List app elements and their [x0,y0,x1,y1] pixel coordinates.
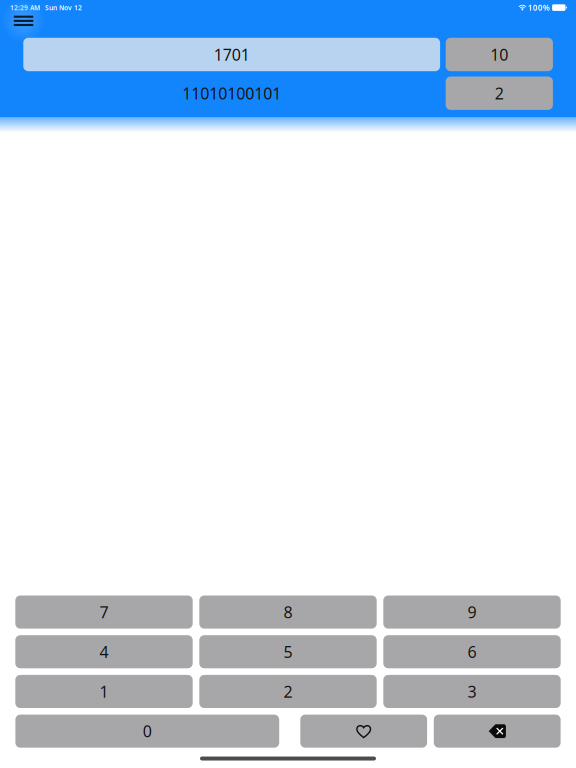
staticText: 6 [467,641,476,662]
button[interactable]: Menu [0,13,48,29]
button[interactable]: 9 [383,595,561,629]
button[interactable]: 2 [446,76,553,110]
button[interactable]: 3 [383,675,561,708]
button[interactable]: 10 [446,38,553,71]
button[interactable]: 11010100101 [23,76,440,110]
staticText: 1 [99,681,108,702]
staticText: 11010100101 [182,83,281,104]
staticText: 1701 [214,44,250,65]
button[interactable]: 2 [199,675,377,708]
staticText: 7 [99,601,108,623]
staticText: 2 [495,83,504,104]
staticText: 8 [283,601,292,623]
button[interactable]: 1701 [23,38,440,71]
staticText: Sun Nov 12 [45,3,82,12]
staticText: 10 [490,44,508,65]
staticText: 0 [143,720,152,742]
staticText: 2 [283,681,292,702]
button[interactable]: Backspace [434,715,561,748]
button[interactable]: 8 [199,595,377,629]
staticText: 12:29 AM [10,3,40,12]
staticText: 5 [283,641,292,662]
staticText: 4 [99,641,108,662]
button[interactable]: 6 [383,635,561,668]
staticText: 9 [467,601,476,623]
button[interactable]: 5 [199,635,377,668]
staticText: 100% [528,2,550,13]
staticText: 3 [467,681,476,702]
button[interactable]: 4 [15,635,193,668]
button[interactable]: 7 [15,595,193,629]
button[interactable]: 0 [15,715,279,748]
button[interactable]: Favourite [300,715,427,748]
button[interactable]: 1 [15,675,193,708]
